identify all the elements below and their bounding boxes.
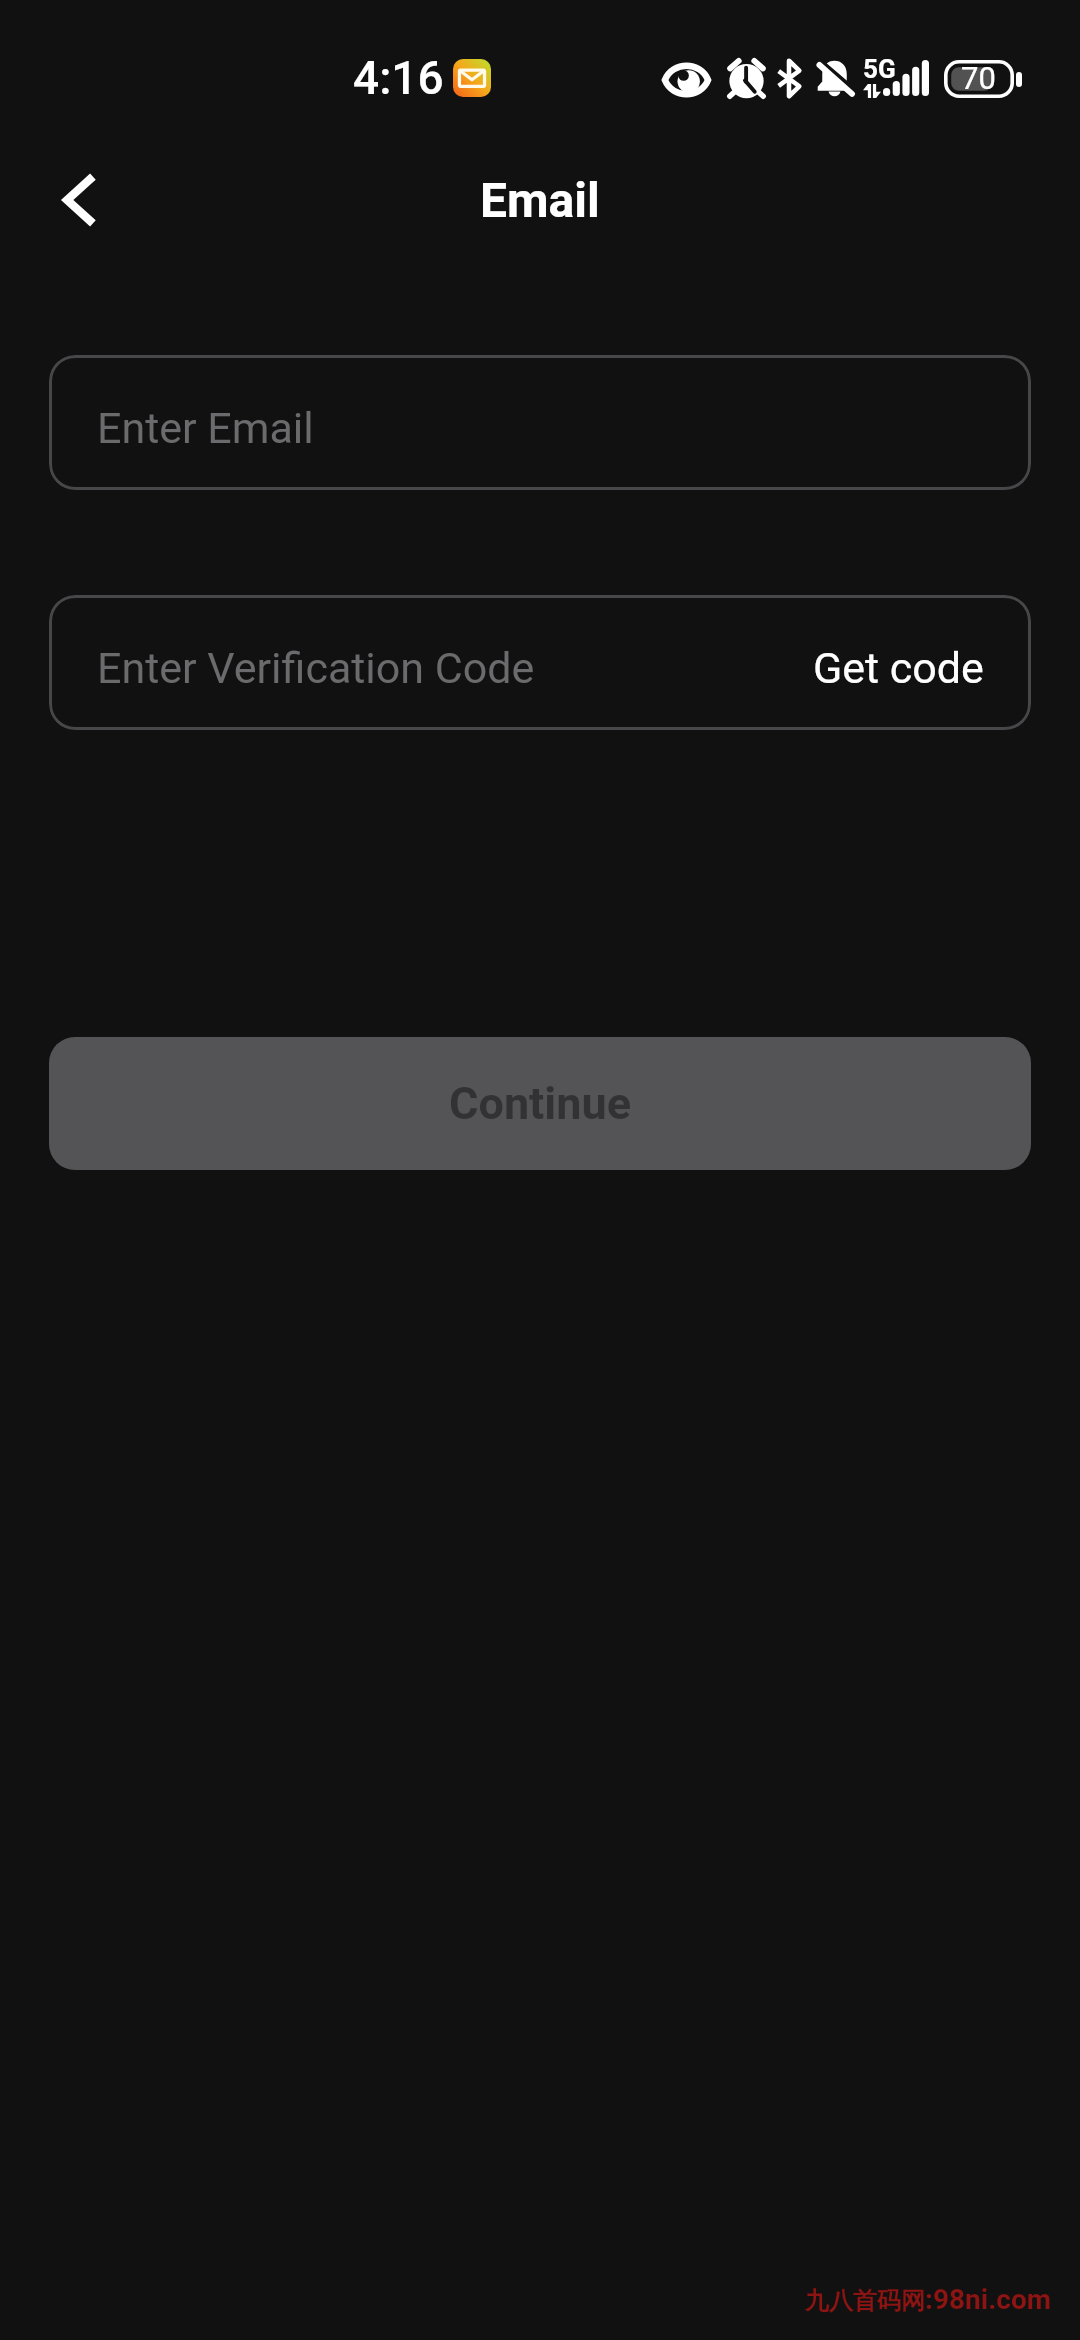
- staticText: 4:16: [353, 51, 444, 105]
- staticText: Continue: [449, 1077, 631, 1130]
- staticText: 5G: [863, 54, 896, 84]
- staticText: Enter Verification Code: [97, 643, 535, 693]
- staticText: Get code: [813, 643, 984, 693]
- staticText: Email: [480, 172, 600, 228]
- staticText: 70: [961, 60, 996, 96]
- button[interactable]: Back: [25, 147, 131, 253]
- button[interactable]: Continue: [49, 1037, 1031, 1170]
- button[interactable]: Enter Verification Code: [49, 595, 1031, 730]
- button[interactable]: Enter Email: [49, 355, 1031, 490]
- button[interactable]: Get code: [813, 595, 984, 730]
- staticText: Enter Email: [97, 403, 314, 453]
- staticText: 九八首码网: [805, 2286, 925, 2316]
- staticText: :98ni.com: [925, 2283, 1051, 2316]
